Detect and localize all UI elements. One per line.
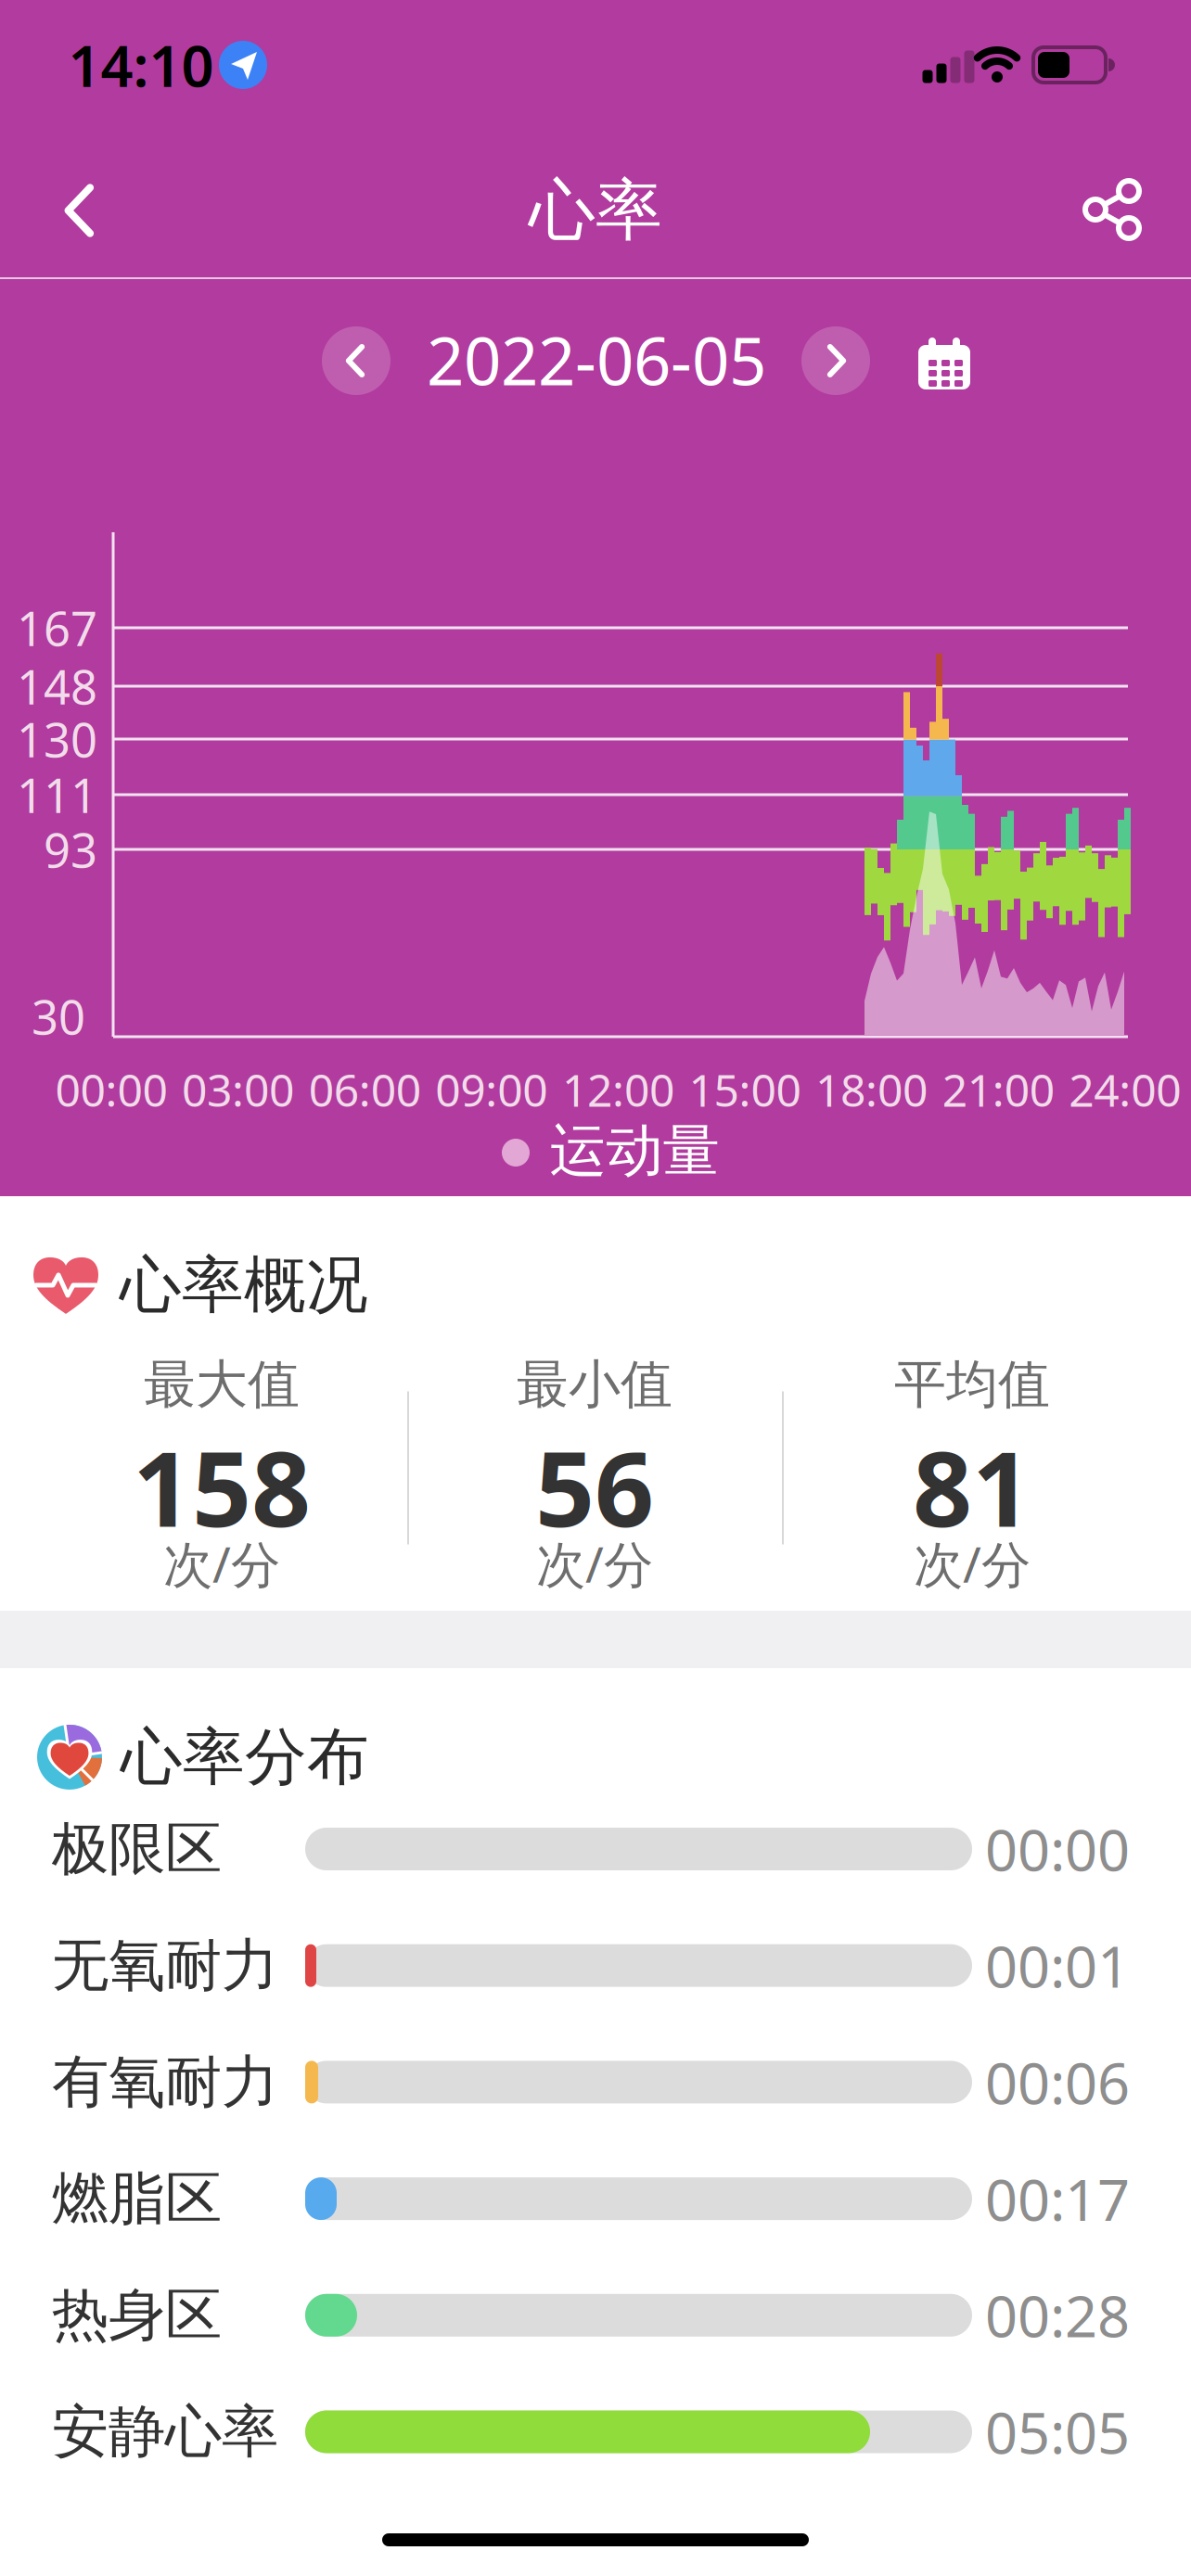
staticText: 极限区 xyxy=(52,1814,222,1884)
staticText: 15:00 xyxy=(689,1060,801,1119)
staticText: 有氧耐力 xyxy=(52,2047,278,2117)
staticText: 158 xyxy=(133,1417,311,1555)
staticText: 次/分 xyxy=(536,1531,653,1596)
staticText: 最大值 xyxy=(144,1353,300,1416)
staticText: 2022-06-05 xyxy=(427,316,766,403)
staticText: 燃脂区 xyxy=(52,2164,222,2234)
staticText: 12:00 xyxy=(562,1060,674,1119)
staticText: 21:00 xyxy=(942,1060,1054,1119)
staticText: 130 xyxy=(17,708,97,770)
staticText: 无氧耐力 xyxy=(52,1931,278,2000)
button[interactable]: Share xyxy=(1070,168,1154,251)
staticText: 18:00 xyxy=(815,1060,928,1119)
staticText: 30 xyxy=(32,985,85,1048)
staticText: 心率 xyxy=(529,170,662,251)
staticText: 心率概况 xyxy=(120,1247,368,1323)
staticText: 运动量 xyxy=(550,1116,719,1186)
button[interactable]: Next day xyxy=(801,326,870,395)
staticText: 00:00 xyxy=(985,1811,1130,1887)
staticText: 平均值 xyxy=(894,1353,1050,1416)
staticText: 次/分 xyxy=(914,1531,1031,1596)
staticText: 00:17 xyxy=(985,2161,1130,2236)
staticText: 14:10 xyxy=(68,27,214,103)
staticText: 148 xyxy=(17,655,97,717)
staticText: 00:28 xyxy=(985,2278,1130,2353)
staticText: 06:00 xyxy=(309,1060,421,1119)
staticText: 00:00 xyxy=(55,1060,167,1119)
staticText: 24:00 xyxy=(1069,1060,1181,1119)
staticText: 05:05 xyxy=(985,2394,1130,2470)
staticText: 热身区 xyxy=(52,2280,222,2350)
staticText: 56 xyxy=(535,1417,654,1555)
staticText: 最小值 xyxy=(517,1353,672,1416)
staticText: 81 xyxy=(913,1417,1031,1555)
staticText: 111 xyxy=(17,764,97,826)
staticText: 安静心率 xyxy=(52,2397,278,2467)
button[interactable]: Previous day xyxy=(322,326,391,395)
staticText: 00:01 xyxy=(985,1928,1130,2003)
staticText: 心率分布 xyxy=(121,1719,369,1795)
staticText: 03:00 xyxy=(182,1060,294,1119)
button[interactable]: Back xyxy=(30,169,132,252)
staticText: 次/分 xyxy=(163,1531,280,1596)
staticText: 93 xyxy=(44,818,97,881)
button[interactable]: Choose date xyxy=(907,323,981,397)
staticText: 167 xyxy=(17,597,97,659)
staticText: 00:06 xyxy=(985,2044,1130,2120)
staticText: 09:00 xyxy=(435,1060,548,1119)
